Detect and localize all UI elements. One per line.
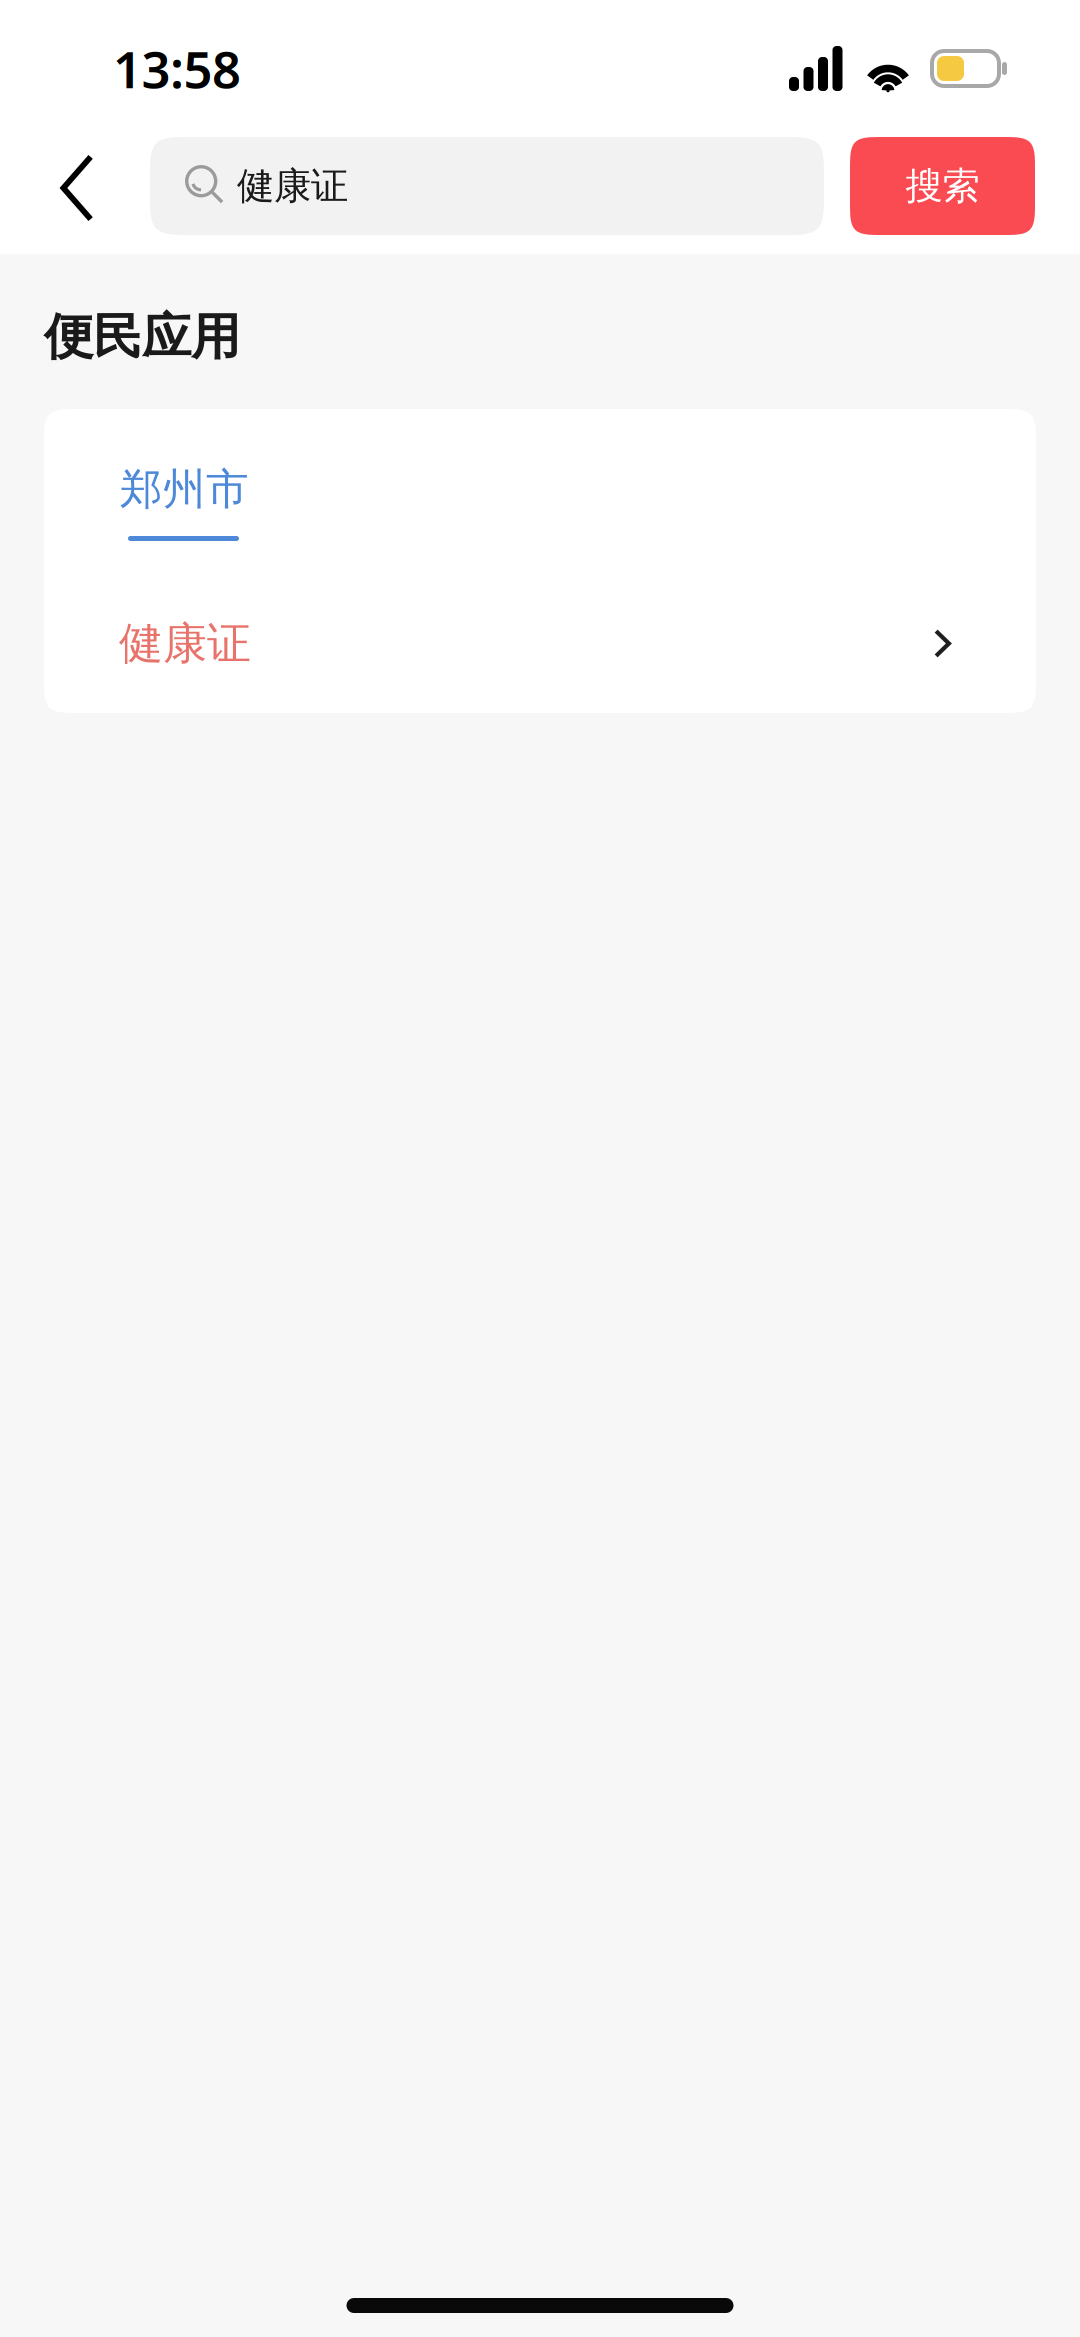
button[interactable]: 健康证	[44, 571, 1036, 716]
staticText: 搜索	[905, 163, 979, 209]
staticText: 13:58	[113, 35, 241, 102]
staticText: 便民应用	[44, 307, 240, 367]
button[interactable]: Back	[0, 137, 124, 235]
staticText: 健康证	[119, 616, 251, 670]
staticText: 健康证	[237, 163, 348, 209]
button[interactable]: 搜索	[850, 137, 1035, 235]
staticText: 郑州市	[120, 463, 249, 515]
button[interactable]: 郑州市	[44, 409, 304, 571]
